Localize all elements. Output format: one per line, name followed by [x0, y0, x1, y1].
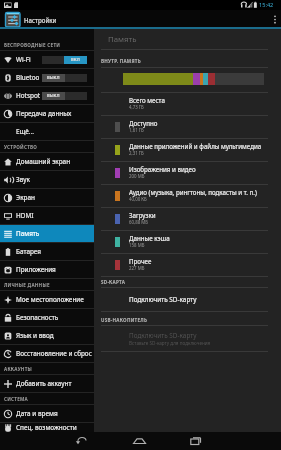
- staticText: Вставьте SD-карту для подключения: [129, 340, 211, 346]
- staticText: АККАУНТЫ: [4, 366, 33, 372]
- button[interactable]: Добавить аккаунт: [0, 375, 94, 392]
- button[interactable]: Hotspot: [0, 87, 94, 104]
- button[interactable]: Домашний экран: [0, 153, 94, 170]
- staticText: USB-НАКОПИТЕЛЬ: [101, 317, 148, 323]
- staticText: Доступно: [129, 119, 158, 127]
- staticText: Домашний экран: [16, 157, 71, 166]
- button[interactable]: Загрузки: [94, 208, 281, 231]
- button[interactable]: Восстановление и сброс: [0, 345, 94, 362]
- staticText: Мое местоположение: [16, 295, 84, 304]
- button[interactable]: Данные приложений и файлы мультимедиа: [94, 139, 281, 162]
- staticText: 227 МБ: [129, 265, 145, 271]
- staticText: Всего места: [129, 96, 165, 104]
- staticText: 4,73 ГБ: [129, 104, 144, 110]
- staticText: Данные кэша: [129, 234, 170, 242]
- button[interactable]: HDMI: [0, 207, 94, 224]
- button[interactable]: Wi-Fi: [0, 51, 94, 68]
- button[interactable]: Settings: [5, 12, 21, 28]
- button[interactable]: Back: [67, 432, 95, 450]
- button[interactable]: Приложения: [0, 261, 94, 278]
- button[interactable]: Подключить SD-карту: [94, 288, 281, 311]
- button[interactable]: Память: [0, 225, 94, 242]
- staticText: Hotspot: [16, 91, 41, 100]
- button[interactable]: Батарея: [0, 243, 94, 260]
- button[interactable]: Recents: [182, 432, 210, 450]
- staticText: 15:42: [259, 1, 274, 9]
- staticText: Изображения и видео: [129, 165, 196, 173]
- staticText: 60,88 МБ: [129, 219, 149, 225]
- staticText: Подключить SD-карту: [129, 295, 197, 304]
- button[interactable]: Всего места: [94, 93, 281, 116]
- staticText: Wi-Fi: [16, 55, 31, 64]
- staticText: ВКЛ: [71, 57, 80, 63]
- button[interactable]: Язык и ввод: [0, 327, 94, 344]
- staticText: Экран: [16, 193, 35, 202]
- staticText: ВЫКЛ: [47, 93, 60, 99]
- staticText: Подключить SD-карту: [129, 331, 197, 340]
- staticText: Память: [108, 34, 137, 45]
- button[interactable]: Доступно: [94, 116, 281, 139]
- staticText: ВЫКЛ: [47, 75, 60, 81]
- staticText: Восстановление и сброс: [16, 349, 92, 358]
- staticText: Добавить аккаунт: [16, 379, 72, 388]
- staticText: БЕСПРОВОДНЫЕ СЕТИ: [4, 42, 61, 48]
- button[interactable]: Bluetoo: [0, 69, 94, 86]
- staticText: Данные приложений и файлы мультимедиа: [129, 142, 262, 150]
- staticText: ВНУТР. ПАМЯТЬ: [101, 58, 141, 64]
- button[interactable]: More options: [269, 10, 281, 29]
- staticText: 200 МБ: [129, 173, 145, 179]
- staticText: Дата и время: [16, 409, 58, 418]
- staticText: Bluetoo: [16, 73, 40, 82]
- button[interactable]: Мое местоположение: [0, 291, 94, 308]
- button[interactable]: Передача данных: [0, 105, 94, 122]
- staticText: Батарея: [16, 247, 41, 256]
- button[interactable]: Спец. возможности: [0, 423, 94, 432]
- staticText: Ещё...: [16, 127, 34, 136]
- button[interactable]: Звук: [0, 171, 94, 188]
- staticText: Загрузки: [129, 211, 156, 219]
- staticText: Память: [16, 229, 40, 238]
- staticText: SD-КАРТА: [101, 279, 126, 285]
- staticText: Прочее: [129, 257, 152, 265]
- staticText: ЛИЧНЫЕ ДАННЫЕ: [4, 282, 50, 288]
- button[interactable]: Ещё...: [0, 123, 94, 140]
- staticText: УСТРОЙСТВО: [4, 144, 38, 150]
- staticText: Спец. возможности: [16, 423, 77, 432]
- staticText: Приложения: [16, 265, 56, 274]
- button[interactable]: Экран: [0, 189, 94, 206]
- button[interactable]: Home: [125, 432, 153, 450]
- staticText: HDMI: [16, 211, 34, 220]
- button[interactable]: Данные кэша: [94, 231, 281, 254]
- staticText: 2,31 ГБ: [129, 150, 144, 156]
- staticText: 1,61 ГБ: [129, 127, 144, 133]
- button[interactable]: Прочее: [94, 254, 281, 277]
- staticText: 158 МБ: [129, 242, 145, 248]
- button[interactable]: Аудио (музыка, рингтоны, подкасты и т. п…: [94, 185, 281, 208]
- button[interactable]: Безопасность: [0, 309, 94, 326]
- staticText: Звук: [16, 175, 30, 184]
- staticText: Передача данных: [16, 109, 72, 118]
- staticText: 40,00 КБ: [129, 196, 147, 202]
- staticText: Безопасность: [16, 313, 59, 322]
- staticText: СИСТЕМА: [4, 396, 29, 402]
- button[interactable]: Дата и время: [0, 405, 94, 422]
- staticText: Настройки: [24, 16, 57, 24]
- button[interactable]: Изображения и видео: [94, 162, 281, 185]
- staticText: Аудио (музыка, рингтоны, подкасты и т. п…: [129, 188, 257, 196]
- staticText: Язык и ввод: [16, 331, 54, 340]
